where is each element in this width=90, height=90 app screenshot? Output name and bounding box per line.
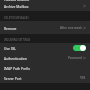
staticText: IMAP Path Prefix (4, 66, 30, 70)
staticText: Password (68, 56, 82, 60)
button[interactable]: Authentication (0, 53, 90, 63)
staticText: Remove (4, 26, 17, 30)
staticText: DELETED MESSAGES (4, 16, 29, 20)
other: Use SSL toggle (73, 45, 86, 51)
button[interactable]: Archive Mailbox (0, 1, 90, 11)
button[interactable]: Use SSL (0, 43, 90, 53)
staticText: Archive Mailbox (4, 4, 29, 8)
button[interactable]: Server Port (0, 73, 90, 83)
staticText: Authentication (4, 56, 27, 60)
button[interactable]: Remove (0, 21, 90, 34)
button[interactable]: IMAP Path Prefix (0, 63, 90, 73)
staticText: Deleted Mailbox (4, 0, 30, 1)
staticText: Server Port (4, 76, 22, 80)
staticText: After one week (60, 26, 82, 30)
staticText: 993 (80, 76, 86, 80)
staticText: INCOMING SETTINGS (4, 38, 31, 42)
staticText: Use SSL (4, 46, 17, 50)
